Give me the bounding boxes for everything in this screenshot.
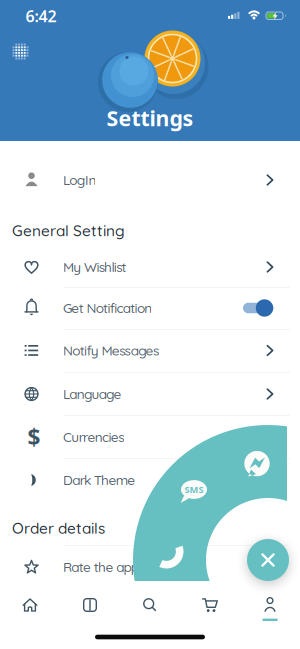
staticText: SMS [184,483,203,496]
staticText: General Setting [12,221,125,240]
button[interactable]: Share by SMS [179,478,209,504]
button[interactable]: My Wishlist [0,246,300,287]
staticText: Language [63,385,121,402]
button[interactable]: Cart [180,584,240,628]
staticText: Notify Messages [63,342,159,359]
button[interactable]: Close share menu [247,539,289,581]
button[interactable]: Dark Theme [0,459,300,500]
button[interactable]: Notify Messages [0,330,300,371]
staticText: Currencies [63,428,124,445]
button[interactable]: Share on Messenger [242,449,272,479]
button[interactable]: Menu [8,39,32,63]
staticText: $ [27,422,40,452]
staticText: Settings [106,104,193,132]
staticText: My Wishlist [63,258,126,275]
staticText: Rate the app [63,558,139,575]
button[interactable]: Call [152,537,186,571]
button[interactable]: Home [0,584,60,628]
staticText: Get Notification [63,299,152,316]
button[interactable]: Get Notification [0,287,300,328]
button[interactable]: LogIn [0,159,300,200]
button[interactable]: Profile [240,584,300,628]
button[interactable]: Language [0,373,300,414]
button[interactable]: Search [120,584,180,628]
staticText: LogIn [63,171,96,188]
button[interactable]: Categories [60,584,120,628]
staticText: Dark Theme [63,471,135,488]
staticText: 6:42 [25,5,56,27]
button[interactable]: $ [0,416,300,457]
staticText: Order details [12,518,105,538]
button[interactable]: Rate the app [0,546,300,587]
